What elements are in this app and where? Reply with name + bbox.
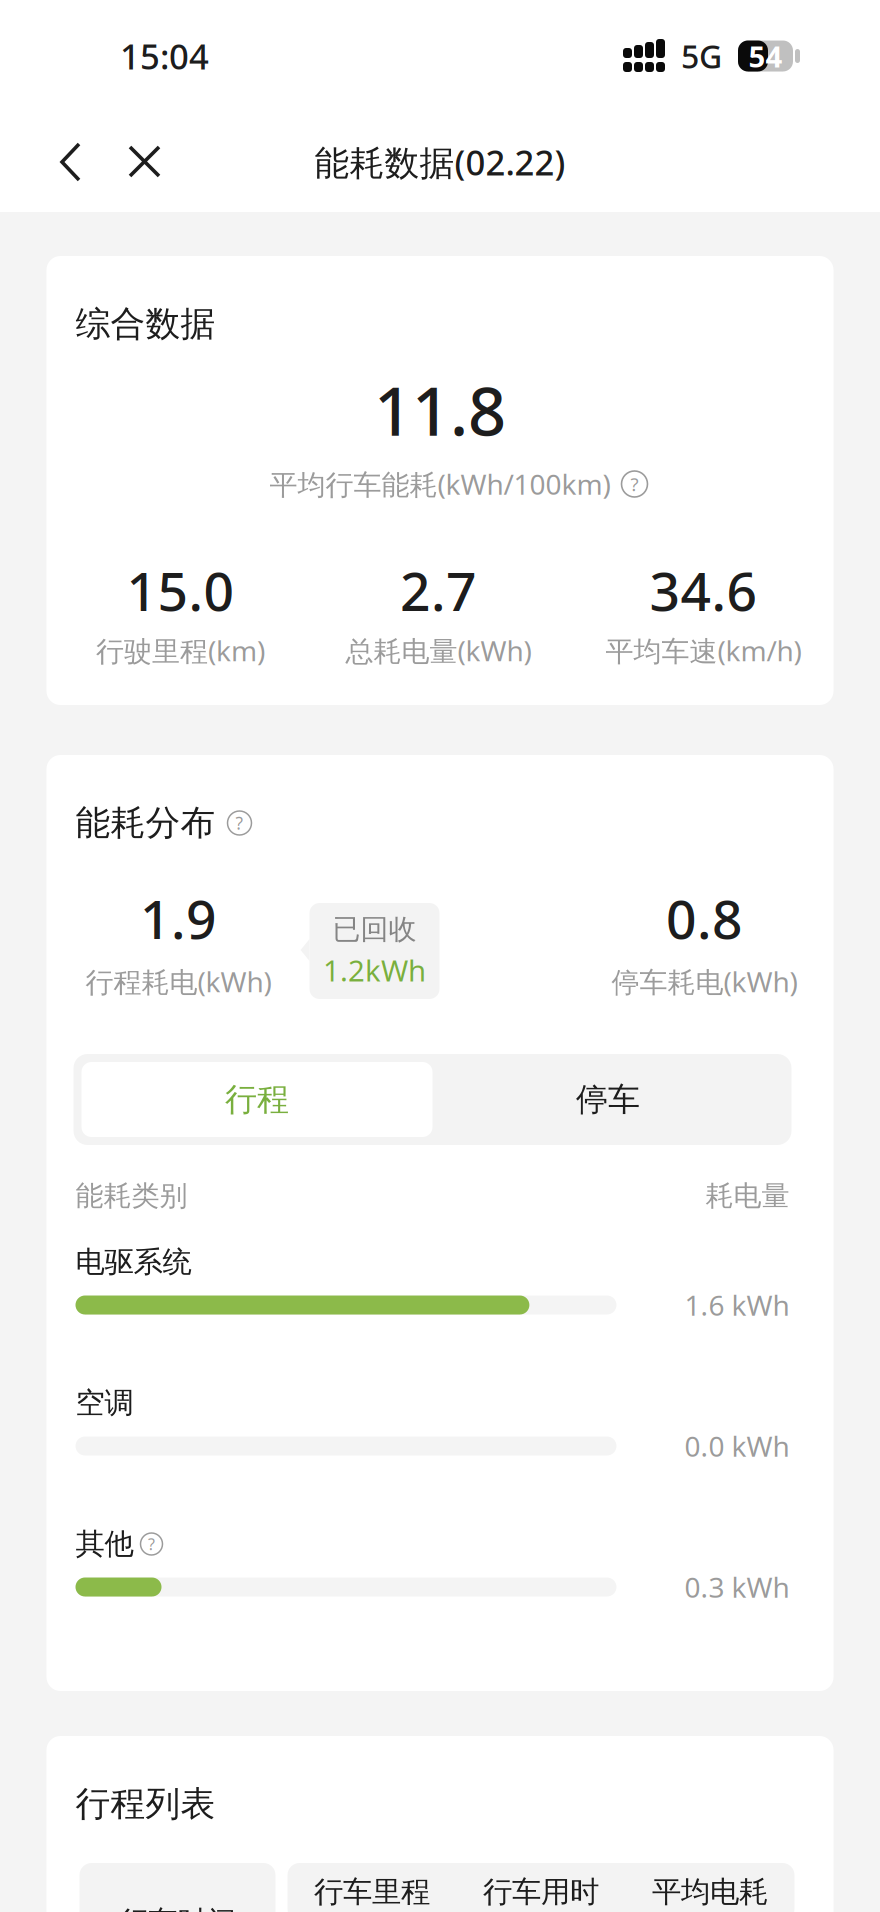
staticText: 15:04 (120, 33, 209, 79)
staticText: 34.6 (649, 555, 757, 626)
staticText: 能耗类别 (75, 1179, 187, 1213)
staticText: 空调 (75, 1385, 133, 1421)
staticText: 行驶里程(km) (96, 632, 265, 669)
button[interactable]: 行程 (81, 1062, 432, 1137)
staticText: 已回收 (332, 912, 416, 947)
staticText: 行程列表 (75, 1783, 215, 1825)
staticText: 54 (748, 36, 782, 75)
staticText: 0.8 (666, 883, 743, 954)
staticText: 停车 (576, 1080, 640, 1119)
staticText: 能耗数据(02.22) (314, 139, 565, 185)
staticText: 行程耗电(kWh) (85, 963, 271, 1000)
staticText: ? (630, 472, 638, 496)
button[interactable]: Close (108, 123, 182, 201)
staticText: 停车耗电(kWh) (611, 963, 797, 1000)
staticText: 能耗分布 (75, 802, 215, 844)
staticText: 耗电量 (705, 1179, 789, 1213)
staticText: 行程 (225, 1080, 289, 1119)
staticText: 5G (681, 35, 722, 77)
staticText: 0.0 kWh (684, 1427, 789, 1465)
staticText: 1.9 (140, 883, 217, 954)
staticText: ? (235, 811, 243, 834)
staticText: ? (148, 1533, 155, 1555)
button[interactable]: 行车用时 (456, 1863, 625, 1912)
staticText: 行车里程 (314, 1874, 430, 1910)
staticText: 总耗电量(kWh) (345, 632, 531, 669)
staticText: 电驱系统 (75, 1244, 191, 1280)
staticText: 平均车速(km/h) (605, 632, 801, 669)
staticText: 行车用时 (483, 1874, 599, 1910)
staticText: 其他 (75, 1526, 133, 1562)
button[interactable]: 停车 (432, 1062, 783, 1137)
staticText: 1.2kWh (323, 951, 426, 990)
staticText: 平均电耗 (652, 1874, 768, 1910)
staticText: 2.7 (400, 555, 477, 626)
staticText: 1.6 kWh (684, 1286, 789, 1324)
staticText: 行车时间 (119, 1904, 235, 1912)
staticText: 15.0 (126, 555, 234, 626)
staticText: 平均行车能耗(kWh/100km) (269, 465, 610, 503)
button[interactable]: Back (34, 123, 108, 201)
staticText: 0.3 kWh (684, 1568, 789, 1606)
button[interactable]: 行车时间 (79, 1863, 275, 1912)
staticText: 11.8 (374, 366, 506, 454)
button[interactable]: 平均电耗 (625, 1863, 794, 1912)
button[interactable]: 行车里程 (287, 1863, 456, 1912)
staticText: 综合数据 (75, 303, 215, 345)
